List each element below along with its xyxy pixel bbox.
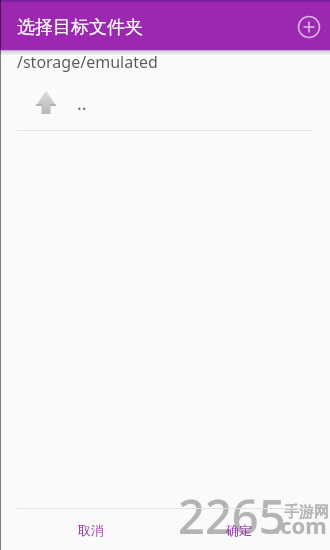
button[interactable]: New folder <box>292 10 326 44</box>
staticText: 选择目标文件夹 <box>17 16 143 39</box>
button[interactable]: .. <box>0 74 330 130</box>
staticText: 2265 <box>178 484 286 548</box>
staticText: 确定 <box>226 522 252 538</box>
staticText: .. <box>77 91 87 116</box>
staticText: 手游网 <box>284 503 329 522</box>
staticText: /storage/emulated <box>17 51 158 73</box>
button[interactable]: 取消 <box>17 509 165 550</box>
staticText: 取消 <box>78 522 104 538</box>
button[interactable]: 确定 <box>165 509 313 550</box>
staticText: .com <box>274 510 327 540</box>
